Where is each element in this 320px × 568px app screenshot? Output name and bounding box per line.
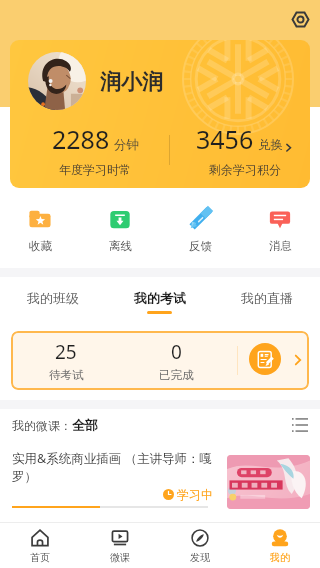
button[interactable]: 我的班级 — [0, 277, 106, 319]
button[interactable]: 反馈 — [160, 198, 240, 254]
staticText: 分钟 — [114, 137, 139, 153]
staticText: 年度学习时常 — [59, 162, 131, 177]
staticText: 兑换 — [258, 137, 283, 153]
staticText: 全部 — [72, 417, 98, 433]
staticText: 润小润 — [100, 69, 163, 95]
staticText: 消息 — [269, 239, 292, 253]
button[interactable]: 消息 — [240, 198, 320, 254]
button[interactable]: 微课 — [80, 523, 160, 568]
button[interactable]: List view — [286, 414, 308, 436]
staticText: 我的直播 — [241, 290, 293, 306]
staticText: 我的微课： — [12, 418, 72, 433]
staticText: 微课 — [110, 551, 130, 564]
button[interactable]: 我的直播 — [213, 277, 320, 319]
staticText: 25 — [55, 339, 77, 365]
button[interactable]: 我的考试 — [106, 277, 213, 319]
staticText: 0 — [171, 339, 182, 365]
button[interactable]: 发现 — [160, 523, 240, 568]
staticText: 反馈 — [189, 239, 212, 253]
button[interactable]: 离线 — [80, 198, 160, 254]
staticText: 已完成 — [159, 368, 194, 382]
staticText: 发现 — [190, 551, 210, 564]
staticText: 实用&系统商业插画 （主讲导师：嘎罗） — [12, 450, 218, 484]
staticText: 首页 — [30, 551, 50, 564]
button[interactable]: 我的 — [240, 523, 320, 568]
staticText: 学习中 — [177, 487, 213, 502]
button[interactable]: Settings — [288, 7, 312, 31]
staticText: 待考试 — [49, 368, 84, 382]
staticText: 我的 — [270, 551, 290, 564]
button[interactable]: 收藏 — [0, 198, 80, 254]
staticText: 我的班级 — [27, 290, 79, 306]
button[interactable]: 实用&系统商业插画 （主讲导师：嘎罗） — [0, 441, 320, 511]
staticText: 我的考试 — [134, 290, 186, 306]
staticText: 收藏 — [29, 239, 52, 253]
button[interactable]: 首页 — [0, 523, 80, 568]
staticText: 3456 — [196, 122, 254, 156]
staticText: 离线 — [109, 239, 132, 253]
staticText: 2288 — [52, 122, 110, 156]
staticText: 剩余学习积分 — [209, 162, 281, 177]
button[interactable]: 25 — [11, 331, 309, 390]
